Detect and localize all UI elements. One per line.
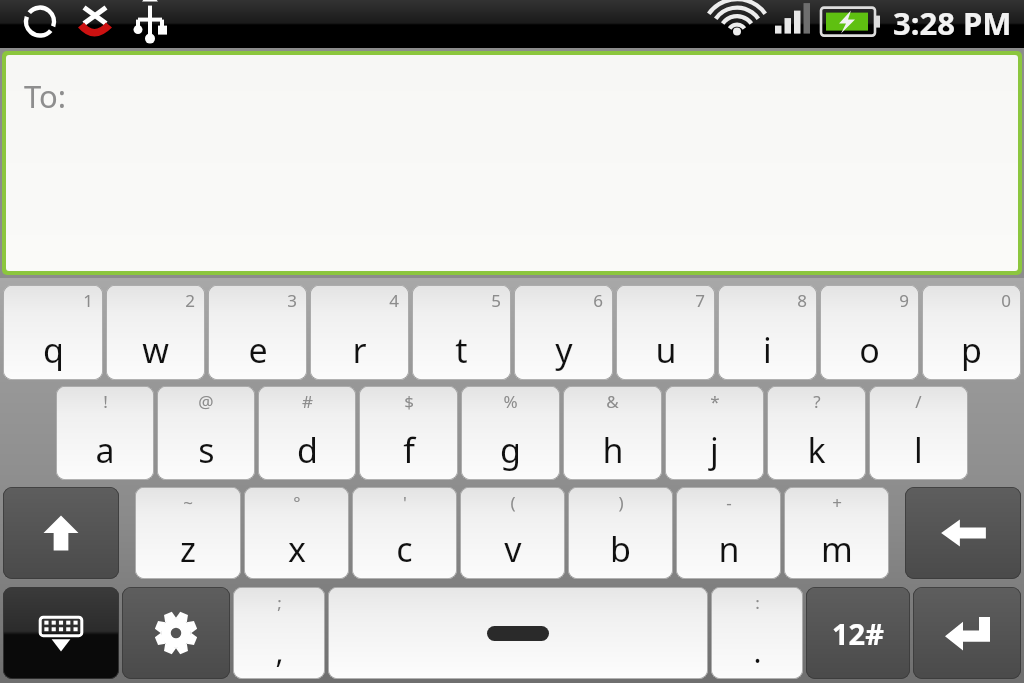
staticText: + [832,491,842,514]
staticText: b [610,526,631,572]
staticText: o [859,327,880,373]
staticText: - [726,491,732,514]
staticText: ) [618,491,624,514]
staticText: e [248,327,268,373]
button[interactable]: ! [56,386,154,480]
button[interactable]: + [784,487,889,579]
staticText: x [288,526,306,572]
button[interactable]: 7 [616,285,715,380]
staticText: s [198,427,215,473]
staticText: 1 [83,289,93,312]
button[interactable]: Enter [913,587,1021,679]
button[interactable]: @ [157,386,255,480]
staticText: 8 [797,289,807,312]
staticText: i [763,327,772,373]
staticText: / [915,390,922,413]
button[interactable]: 8 [718,285,817,380]
staticText: 9 [899,289,909,312]
button[interactable]: 3 [208,285,307,380]
staticText: ~ [183,491,193,514]
staticText: To: [24,75,67,117]
button[interactable]: 0 [922,285,1021,380]
button[interactable]: ? [767,386,866,480]
staticText: @ [198,390,214,413]
staticText: 4 [389,289,399,312]
button[interactable]: * [665,386,764,480]
button[interactable]: ; [233,587,325,679]
staticText: v [504,526,522,572]
staticText: , [275,631,284,672]
button[interactable]: Symbols [806,587,910,679]
staticText: 7 [695,289,705,312]
staticText: ( [510,491,516,514]
button[interactable]: Hide keyboard [3,587,119,679]
button[interactable]: Shift [3,487,119,579]
button[interactable]: - [676,487,781,579]
button[interactable]: # [258,386,356,480]
staticText: f [403,427,415,473]
staticText: 3:28 PM [893,2,1012,44]
button[interactable]: 2 [106,285,205,380]
staticText: * [710,390,720,413]
button[interactable]: ' [352,487,457,579]
staticText: 6 [593,289,603,312]
staticText: d [297,427,318,473]
staticText: 5 [491,289,501,312]
staticText: c [396,526,413,572]
staticText: j [710,427,719,473]
staticText: q [43,327,64,373]
staticText: ; [277,591,282,614]
button[interactable]: % [461,386,560,480]
button[interactable]: ~ [135,487,241,579]
staticText: l [914,427,923,473]
staticText: m [821,526,853,572]
button[interactable]: 5 [412,285,511,380]
staticText: y [555,327,573,373]
staticText: . [753,631,762,672]
staticText: g [500,427,521,473]
staticText: u [655,327,677,373]
staticText: ° [293,491,301,514]
staticText: w [142,327,169,373]
button[interactable]: To: [6,55,1018,271]
button[interactable]: 4 [310,285,409,380]
staticText: ! [103,390,108,413]
staticText: 12# [832,614,884,653]
staticText: ? [813,390,821,413]
button[interactable]: ° [244,487,349,579]
staticText: n [718,526,740,572]
staticText: # [302,390,313,413]
staticText: r [352,327,367,373]
staticText: 0 [1001,289,1011,312]
staticText: k [807,427,826,473]
staticText: $ [404,390,414,413]
staticText: ' [403,491,407,514]
staticText: a [95,427,115,473]
button[interactable]: / [869,386,968,480]
staticText: 3 [287,289,297,312]
button[interactable]: Keyboard settings [122,587,230,679]
staticText: p [961,327,982,373]
staticText: h [602,427,624,473]
button[interactable]: ( [460,487,565,579]
button[interactable]: $ [359,386,458,480]
button[interactable]: Space [328,587,708,679]
button[interactable]: 9 [820,285,919,380]
staticText: t [455,327,468,373]
staticText: : [755,591,760,614]
staticText: z [180,526,196,572]
staticText: 2 [185,289,195,312]
button[interactable]: ) [568,487,673,579]
button[interactable]: & [563,386,662,480]
staticText: & [606,390,619,413]
button[interactable]: : [711,587,803,679]
button[interactable]: Backspace [905,487,1021,579]
staticText: % [503,390,518,413]
button[interactable]: 6 [514,285,613,380]
button[interactable]: 1 [3,285,103,380]
